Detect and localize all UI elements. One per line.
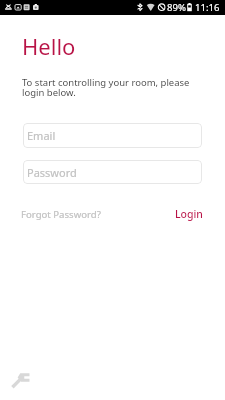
button[interactable]: Password [23,160,202,184]
staticText: Email [27,128,56,143]
staticText: 89% [167,1,186,14]
staticText: 11:16 [195,1,220,14]
staticText: Password [27,165,77,180]
staticText: Hello [22,31,76,61]
button[interactable]: Email [23,123,202,148]
staticText: Forgot Password? [21,208,101,221]
button[interactable]: Settings [5,368,35,390]
button[interactable]: Login [175,207,203,221]
button[interactable]: Forgot Password? [21,208,101,221]
staticText: To start controlling your room, please l… [22,76,190,99]
staticText: Login [175,207,203,221]
